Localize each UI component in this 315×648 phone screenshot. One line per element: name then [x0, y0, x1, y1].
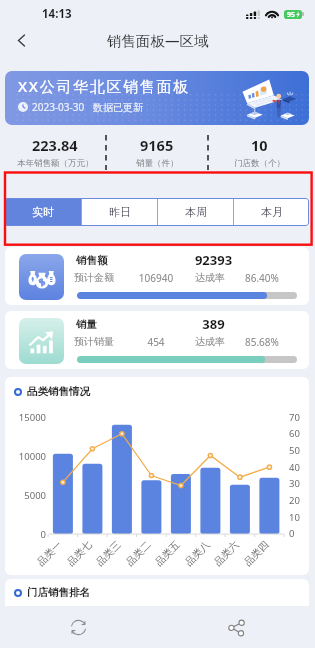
staticText: 60 — [289, 427, 309, 440]
staticText: 50 — [289, 444, 309, 457]
staticText: 品类六 — [211, 538, 242, 569]
staticText: 昨日 — [109, 205, 131, 219]
staticText: 预计金额 — [74, 271, 114, 284]
staticText: 70 — [289, 411, 309, 424]
staticText: 106940 — [121, 271, 191, 285]
staticText: 品类七 — [64, 538, 95, 569]
staticText: XX公司华北区销售面板 — [18, 76, 191, 96]
button[interactable]: 昨日 — [82, 198, 157, 226]
staticText: 达成率 — [195, 271, 225, 284]
staticText: 品类二 — [123, 538, 154, 569]
staticText: 20 — [289, 494, 309, 507]
staticText: 0 — [11, 528, 46, 541]
staticText: 实时 — [32, 205, 54, 219]
staticText: 10 — [289, 511, 309, 524]
button[interactable]: Refresh — [0, 607, 157, 648]
staticText: 85.68% — [245, 335, 279, 349]
button[interactable]: 实时 — [5, 198, 81, 226]
staticText: 389 — [160, 315, 267, 333]
staticText: 品类五 — [152, 538, 183, 569]
staticText: 数据已更新 — [93, 101, 143, 114]
staticText: 预计销量 — [74, 335, 114, 348]
staticText: 门店销售排名 — [27, 586, 90, 599]
staticText: 2023-03-30 — [32, 100, 85, 114]
staticText: 15000 — [11, 411, 46, 424]
button[interactable]: 销售额 — [5, 247, 309, 305]
button[interactable]: 本月 — [234, 198, 309, 226]
staticText: 86.40% — [245, 271, 279, 285]
staticText: 销售面板—区域 — [107, 30, 209, 50]
staticText: 门店数（个） — [234, 158, 285, 169]
button[interactable]: Back — [6, 25, 36, 55]
staticText: 品类一 — [34, 538, 65, 569]
staticText: 销量（件） — [136, 158, 179, 169]
staticText: 品类三 — [93, 538, 124, 569]
button[interactable]: 销量 — [5, 311, 309, 369]
button[interactable]: 本周 — [158, 198, 233, 226]
staticText: 本周 — [185, 205, 207, 219]
staticText: 10000 — [11, 450, 46, 463]
staticText: 销售额 — [76, 254, 108, 267]
staticText: 品类销售情况 — [27, 385, 90, 398]
staticText: 14:13 — [42, 6, 72, 22]
staticText: 销量 — [76, 318, 97, 331]
staticText: 品类四 — [241, 538, 272, 569]
staticText: 92393 — [160, 251, 267, 269]
staticText: 本年销售额（万元） — [17, 158, 94, 169]
staticText: 5000 — [11, 489, 46, 502]
staticText: 9165 — [140, 135, 174, 155]
staticText: 30 — [289, 477, 309, 490]
button[interactable]: Share — [157, 607, 315, 648]
staticText: 454 — [121, 335, 191, 349]
staticText: 95 — [287, 10, 296, 19]
staticText: 10 — [251, 135, 268, 155]
staticText: 本月 — [261, 205, 283, 219]
staticText: 品类八 — [182, 538, 213, 569]
staticText: 40 — [289, 461, 309, 474]
staticText: 0 — [289, 527, 309, 540]
staticText: 达成率 — [195, 335, 225, 348]
staticText: 223.84 — [32, 135, 78, 155]
